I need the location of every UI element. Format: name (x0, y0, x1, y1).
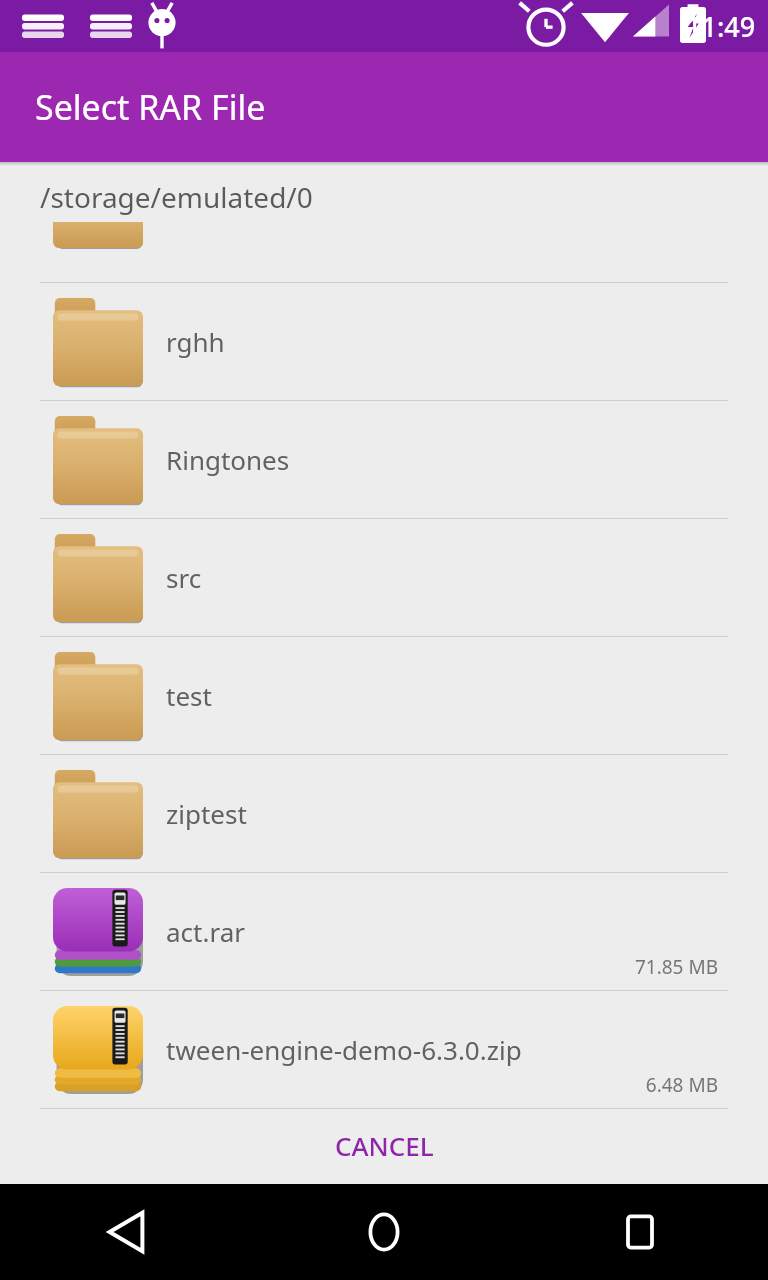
button[interactable]: src (0, 519, 768, 636)
staticText: tween-engine-demo-6.3.0.zip (166, 1032, 522, 1067)
staticText: 71.85 MB (634, 954, 718, 980)
staticText: rghh (166, 324, 225, 359)
button[interactable]: Back (0, 1184, 256, 1280)
staticText: 11:49 (686, 8, 756, 45)
staticText: Select RAR File (35, 84, 266, 130)
button[interactable]: CANCEL (0, 1109, 768, 1181)
button[interactable]: act.rar (0, 873, 768, 990)
button[interactable]: tween-engine-demo-6.3.0.zip (0, 991, 768, 1108)
staticText: act.rar (166, 914, 245, 949)
staticText: ziptest (166, 796, 247, 831)
button[interactable]: rghh (0, 283, 768, 400)
staticText: /storage/emulated/0 (40, 178, 313, 216)
button[interactable]: test (0, 637, 768, 754)
button[interactable]: Recent apps (512, 1184, 768, 1280)
staticText: 6.48 MB (645, 1072, 718, 1098)
staticText: CANCEL (335, 1128, 434, 1163)
staticText: src (166, 560, 202, 595)
staticText: Ringtones (166, 442, 290, 477)
button[interactable]: Ringtones (0, 401, 768, 518)
button[interactable] (0, 222, 768, 282)
button[interactable]: ziptest (0, 755, 768, 872)
staticText: test (166, 678, 212, 713)
button[interactable]: Home (256, 1184, 512, 1280)
